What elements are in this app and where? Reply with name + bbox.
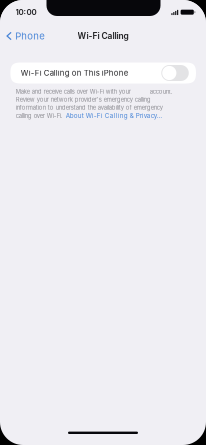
staticText: account. bbox=[150, 88, 173, 95]
staticText: calling over Wi-Fi. bbox=[16, 112, 63, 119]
button[interactable]: About Wi-Fi Calling & Privacy… bbox=[66, 112, 162, 120]
staticText: Make and receive calls over Wi-Fi with y… bbox=[16, 88, 131, 95]
button[interactable]: Phone bbox=[0, 26, 54, 46]
staticText: Review your network provider's emergency… bbox=[16, 96, 151, 103]
staticText: 10:00 bbox=[16, 7, 37, 17]
button[interactable]: Wi-Fi Calling on This iPhone bbox=[10, 62, 196, 83]
staticText: Wi-Fi Calling bbox=[77, 31, 128, 41]
staticText: About Wi-Fi Calling & Privacy… bbox=[66, 112, 162, 120]
staticText: Phone bbox=[15, 30, 45, 42]
staticText: Wi-Fi Calling on This iPhone bbox=[21, 68, 129, 78]
staticText: information to understand the availabili… bbox=[16, 104, 163, 111]
